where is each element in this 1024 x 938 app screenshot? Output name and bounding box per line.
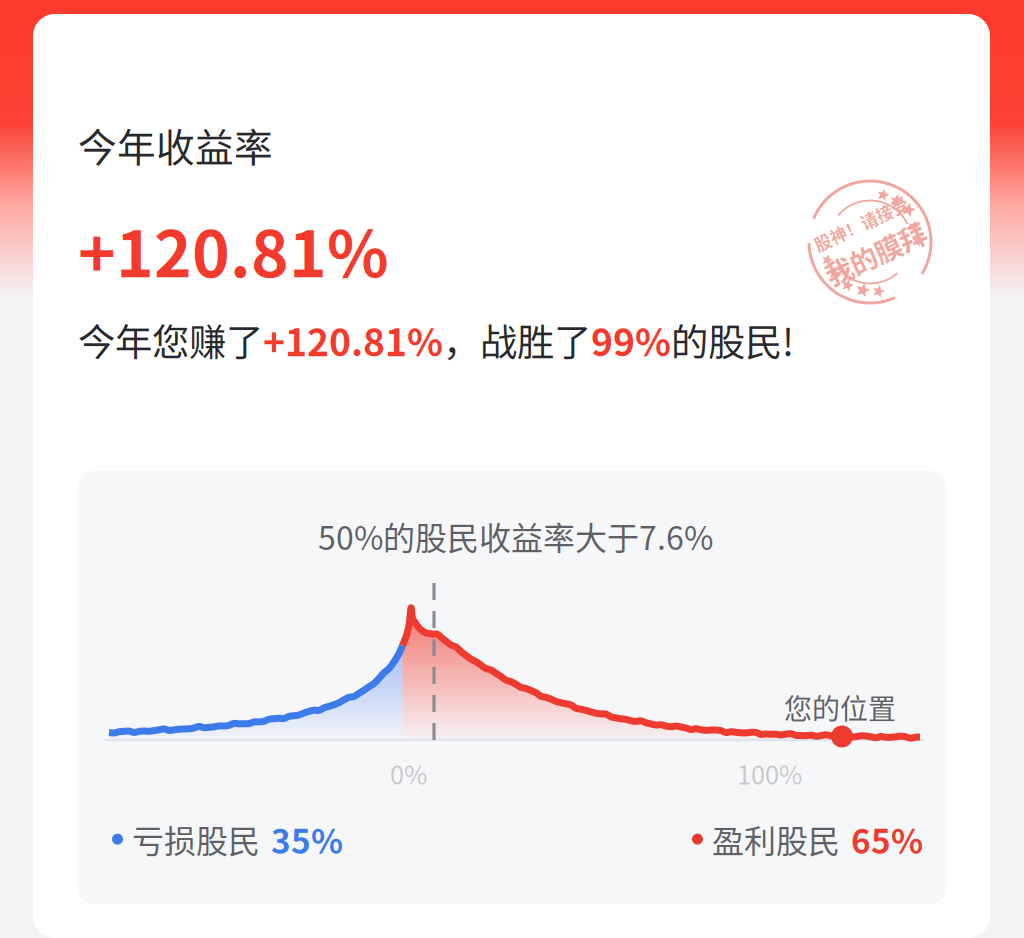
staticText: 亏损股民 [132, 816, 260, 862]
staticText: +120.81% [78, 203, 389, 296]
staticText: 35% [271, 815, 343, 863]
staticText: ， [443, 313, 480, 367]
staticText: 50%的股民收益率大于7.6% [318, 513, 713, 559]
staticText: 盈利股民 [712, 816, 840, 862]
staticText: 100% [737, 755, 802, 792]
staticText: +120.81% [263, 313, 443, 367]
staticText: 今年您赚了 [78, 313, 263, 367]
staticText: 今年收益率 [78, 117, 273, 173]
staticText: 的股民! [671, 313, 794, 367]
staticText: 65% [851, 815, 923, 863]
staticText: 我的膜拜 [816, 235, 924, 274]
staticText: 0% [390, 755, 427, 792]
staticText: 99% [591, 313, 671, 367]
staticText: 战胜了 [480, 313, 591, 367]
staticText: 您的位置 [784, 687, 896, 727]
staticText: 股神！请接受 [819, 210, 921, 234]
